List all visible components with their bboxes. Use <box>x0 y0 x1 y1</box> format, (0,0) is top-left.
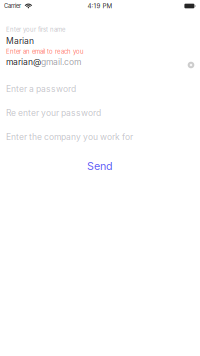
staticText: Marian <box>6 36 34 46</box>
button[interactable]: Send <box>0 159 200 173</box>
staticText: gmail.com <box>41 57 81 67</box>
button[interactable]: Enter an email to reach you <box>0 47 200 68</box>
button[interactable]: Enter the company you work for <box>0 131 200 143</box>
button[interactable]: Clear text <box>184 58 197 71</box>
staticText: marian@ <box>6 57 41 67</box>
staticText: Enter the company you work for <box>6 132 133 142</box>
button[interactable]: Enter your first name <box>0 24 200 47</box>
staticText: Enter your first name <box>6 26 65 33</box>
staticText: Re enter your password <box>6 108 101 118</box>
staticText: Enter a password <box>6 84 76 94</box>
staticText: Send <box>87 159 113 172</box>
staticText: Enter an email to reach you <box>6 48 84 55</box>
button[interactable]: Re enter your password <box>0 107 200 119</box>
staticText: 4:19 PM <box>87 2 112 10</box>
staticText: Carrier <box>4 2 21 9</box>
button[interactable]: Enter a password <box>0 83 200 95</box>
